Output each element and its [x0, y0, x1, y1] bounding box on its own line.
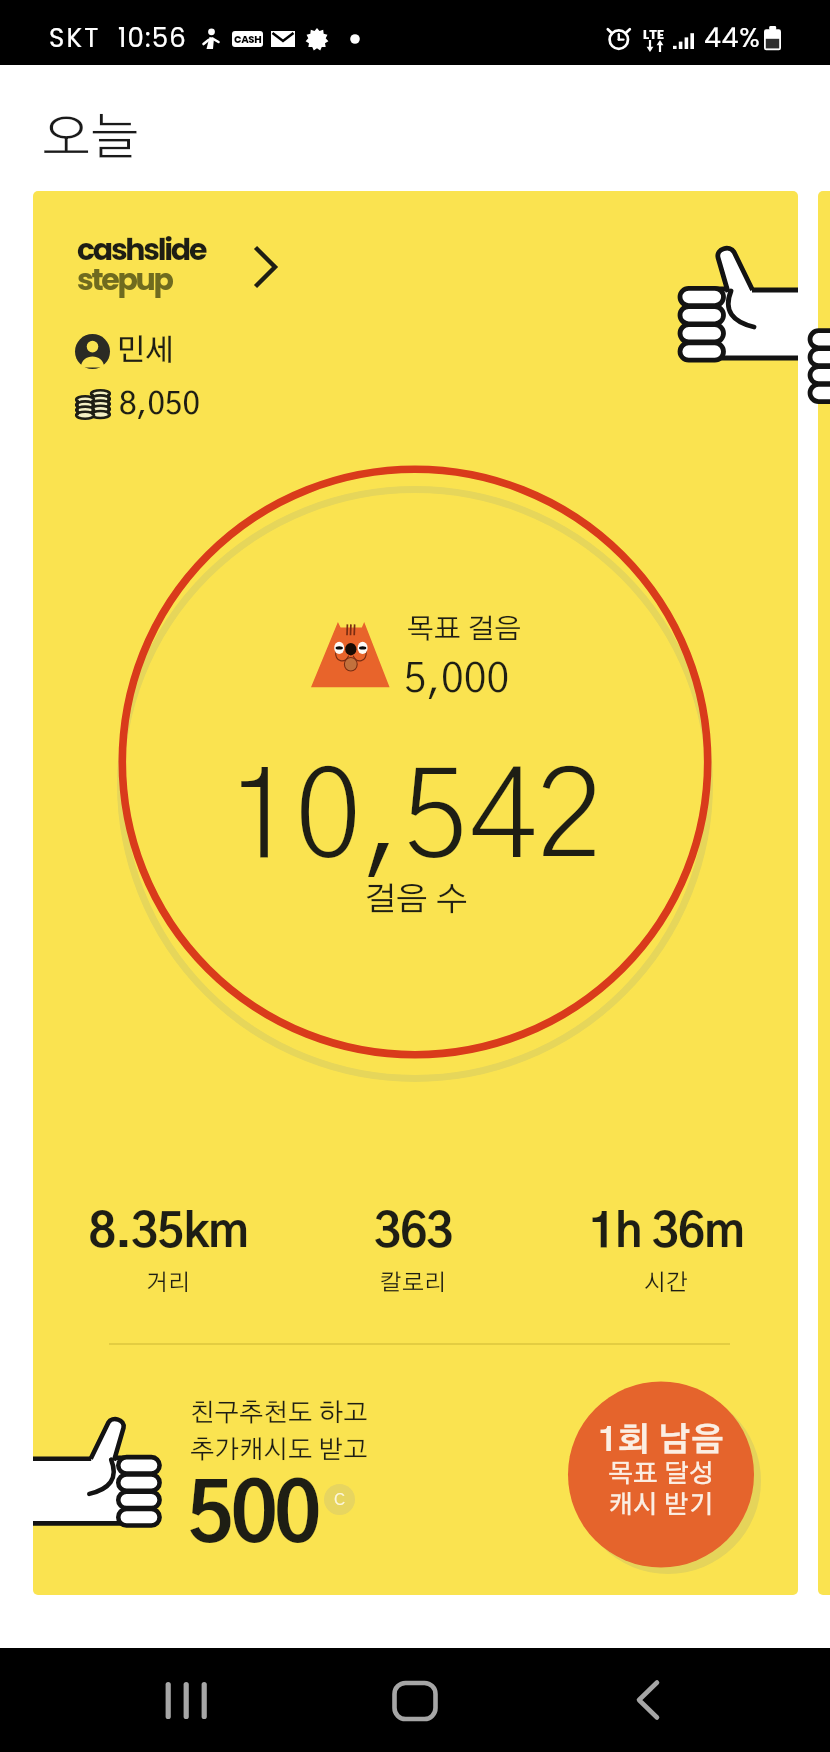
- staticText: 추가캐시도 받고: [190, 1438, 368, 1464]
- button[interactable]: Home: [372, 1658, 458, 1744]
- staticText: 민세: [116, 336, 175, 366]
- staticText: 거리: [38, 1272, 298, 1295]
- staticText: 10:56: [118, 20, 188, 56]
- staticText: 1회 남음: [568, 1425, 754, 1458]
- staticText: 8,050: [119, 389, 201, 420]
- staticText: 5,000: [404, 659, 510, 700]
- staticText: 목표 걸음: [407, 616, 522, 644]
- staticText: 친구추천도 하고: [190, 1401, 368, 1427]
- staticText: 44%: [704, 19, 761, 57]
- staticText: 10,542: [228, 759, 603, 881]
- staticText: 걸음 수: [364, 884, 468, 917]
- button[interactable]: Back: [606, 1658, 692, 1744]
- staticText: 칼로리: [283, 1272, 543, 1295]
- staticText: 오늘: [42, 113, 140, 164]
- staticText: LTE: [643, 25, 664, 43]
- staticText: 캐시 받기: [568, 1493, 754, 1519]
- staticText: CASH: [234, 32, 262, 46]
- button[interactable]: cashslide: [71, 227, 323, 303]
- button[interactable]: cashslide: [33, 191, 798, 1595]
- staticText: 목표 달성: [568, 1462, 754, 1488]
- button[interactable]: 1회 남음: [568, 1381, 754, 1567]
- staticText: SKT: [49, 20, 101, 56]
- staticText: cashslide: [77, 229, 206, 271]
- button[interactable]: 8.35km: [38, 1198, 298, 1306]
- button[interactable]: 363: [283, 1198, 543, 1306]
- button[interactable]: 1h 36m: [536, 1198, 796, 1306]
- staticText: 1h 36m: [536, 1210, 796, 1257]
- staticText: stepup: [77, 259, 172, 301]
- staticText: 8.35km: [38, 1210, 298, 1257]
- staticText: C: [334, 1491, 345, 1508]
- staticText: 363: [283, 1210, 543, 1257]
- staticText: 시간: [536, 1272, 796, 1295]
- staticText: 500: [187, 1477, 318, 1558]
- button[interactable]: Recent apps: [144, 1658, 230, 1744]
